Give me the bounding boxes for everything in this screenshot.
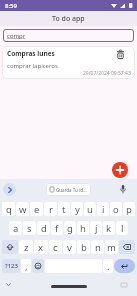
button[interactable]: k xyxy=(103,221,115,235)
staticText: b xyxy=(81,241,87,254)
button[interactable]: b xyxy=(77,240,90,254)
staticText: u xyxy=(87,203,93,216)
button[interactable]: w xyxy=(16,202,29,216)
staticText: q xyxy=(6,203,12,216)
button[interactable] xyxy=(112,162,128,178)
staticText: w xyxy=(19,203,27,216)
staticText: c xyxy=(53,241,58,254)
staticText: g xyxy=(67,222,73,235)
staticText: , xyxy=(25,260,28,273)
button[interactable]: x xyxy=(34,240,48,254)
button[interactable]: j xyxy=(90,221,102,235)
button[interactable]: r xyxy=(44,202,57,216)
button[interactable] xyxy=(3,183,16,196)
button[interactable]: . xyxy=(103,259,113,273)
staticText: p xyxy=(126,203,132,216)
button[interactable]: i xyxy=(97,202,109,216)
staticText: Guarda Tu id... xyxy=(56,187,87,193)
staticText: 8:59 xyxy=(5,2,17,10)
staticText: Compras lunes xyxy=(7,49,55,58)
staticText: h xyxy=(80,222,86,235)
staticText: i xyxy=(102,203,105,216)
button[interactable]: , xyxy=(21,259,31,273)
button[interactable]: z xyxy=(19,240,33,254)
button[interactable]: q xyxy=(2,202,15,216)
button[interactable] xyxy=(2,240,18,254)
button[interactable]: v xyxy=(63,240,76,254)
button[interactable]: compr xyxy=(3,29,134,42)
button[interactable]: h xyxy=(77,221,89,235)
button[interactable]: ?123 xyxy=(2,259,20,273)
staticText: n xyxy=(95,241,101,254)
staticText: s xyxy=(27,222,32,235)
staticText: x xyxy=(38,241,44,254)
button[interactable]: c xyxy=(49,240,62,254)
button[interactable]: Compras lunes xyxy=(2,46,135,79)
staticText: t xyxy=(62,203,66,216)
staticText: f xyxy=(55,222,59,235)
button[interactable]: y xyxy=(71,202,83,216)
staticText: j xyxy=(95,222,98,235)
button[interactable]: g xyxy=(64,221,76,235)
button[interactable]: d xyxy=(37,221,50,235)
staticText: z xyxy=(24,241,29,254)
staticText: ?123 xyxy=(5,262,18,270)
button[interactable]: f xyxy=(51,221,63,235)
button[interactable]: t xyxy=(58,202,70,216)
staticText: v xyxy=(67,241,72,254)
staticText: To do app xyxy=(52,14,85,24)
staticText: d xyxy=(41,222,47,235)
button[interactable]: Guarda Tu id... xyxy=(50,183,87,196)
button[interactable]: a xyxy=(9,221,22,235)
staticText: compr xyxy=(7,32,26,40)
staticText: comprar lapiceros xyxy=(7,62,58,70)
staticText: a xyxy=(13,222,19,235)
button[interactable] xyxy=(114,259,135,273)
staticText: 29/07/2024 09:57:43 xyxy=(83,70,131,77)
button[interactable]: o xyxy=(110,202,122,216)
button[interactable]: n xyxy=(91,240,104,254)
staticText: k xyxy=(106,222,112,235)
staticText: . xyxy=(107,260,110,273)
button[interactable]: l xyxy=(116,221,128,235)
button[interactable] xyxy=(119,240,135,254)
staticText: y xyxy=(75,203,80,216)
button[interactable]: p xyxy=(123,202,135,216)
button[interactable] xyxy=(32,259,44,273)
staticText: l xyxy=(121,222,124,235)
staticText: r xyxy=(49,203,53,216)
button[interactable]: u xyxy=(84,202,96,216)
button[interactable]: e xyxy=(30,202,43,216)
button[interactable] xyxy=(117,50,124,59)
staticText: m xyxy=(107,241,116,254)
button[interactable]: m xyxy=(105,240,118,254)
button[interactable]: s xyxy=(23,221,36,235)
staticText: o xyxy=(113,203,119,216)
staticText: e xyxy=(34,203,40,216)
